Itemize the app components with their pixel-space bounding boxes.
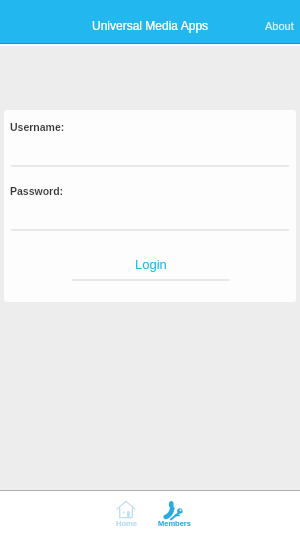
staticText: Universal Media Apps [92,19,209,32]
staticText: Login [135,257,167,272]
button[interactable]: Members [154,491,194,533]
staticText: Home [116,519,137,527]
staticText: Members [158,519,191,527]
staticText: Username: [10,121,65,133]
button[interactable]: Home [106,491,146,533]
button[interactable]: Login [72,257,229,281]
button[interactable]: About [257,12,300,40]
staticText: About [265,20,294,32]
staticText: Password: [10,185,64,197]
